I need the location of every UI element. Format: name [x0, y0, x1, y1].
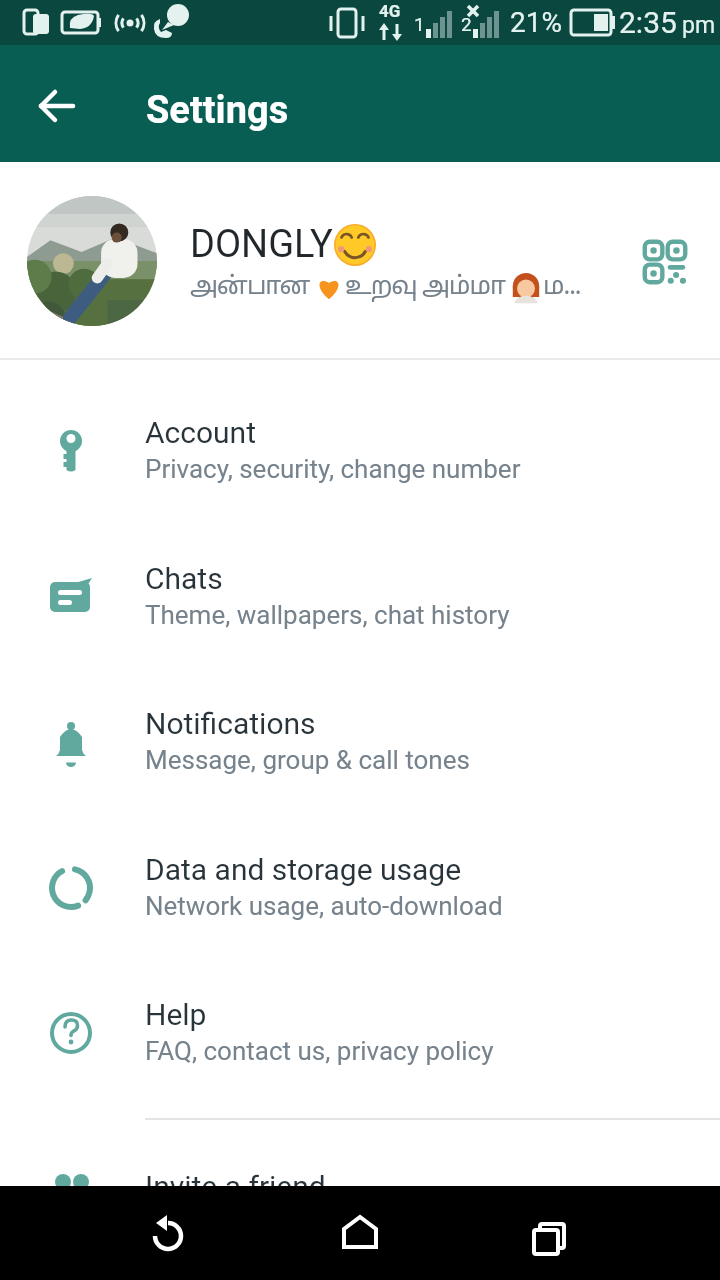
button[interactable]: Notifications [0, 676, 720, 822]
staticText: 2 [461, 13, 472, 35]
staticText: உறவு அம்மா [345, 272, 511, 303]
button[interactable]: Chats [0, 531, 720, 677]
staticText: 21% [510, 6, 562, 39]
button[interactable] [310, 1186, 410, 1280]
staticText: 4G [379, 1, 401, 21]
button[interactable] [499, 1186, 599, 1280]
staticText: அன்பான [190, 272, 315, 303]
button[interactable] [629, 226, 701, 298]
staticText: Message, group & call tones [145, 745, 470, 775]
staticText: pm [682, 12, 716, 39]
button[interactable]: DONGLY [0, 162, 720, 358]
staticText: Network usage, auto-download [145, 891, 503, 921]
staticText: DONGLY [190, 222, 333, 267]
staticText: Chats [145, 561, 223, 596]
button[interactable] [25, 74, 89, 138]
button[interactable] [118, 1186, 218, 1280]
staticText: Theme, wallpapers, chat history [145, 600, 510, 630]
staticText: Privacy, security, change number [145, 454, 521, 484]
staticText: ம... [543, 272, 581, 303]
staticText: 2:35 [619, 5, 677, 40]
staticText: Invite a friend [145, 1169, 326, 1204]
staticText: Notifications [145, 706, 316, 741]
button[interactable]: Account [0, 385, 720, 531]
button[interactable]: Data and storage usage [0, 822, 720, 968]
staticText: Account [145, 415, 257, 450]
button[interactable]: Help [0, 967, 720, 1113]
staticText: Settings [146, 88, 289, 133]
staticText: Data and storage usage [145, 852, 462, 887]
staticText: FAQ, contact us, privacy policy [145, 1036, 494, 1066]
button[interactable]: Invite a friend [0, 1140, 720, 1186]
staticText: 1 [414, 13, 425, 35]
staticText: Help [145, 997, 207, 1032]
